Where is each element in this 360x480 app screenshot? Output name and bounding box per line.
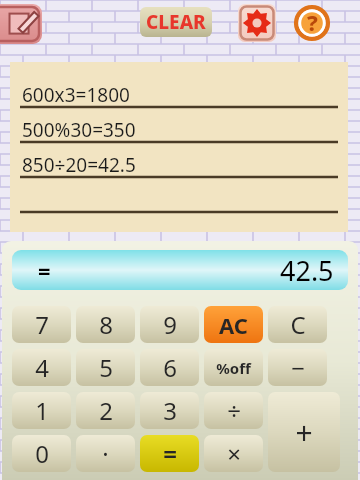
staticText: 9 [163,308,177,341]
staticText: − [291,351,305,384]
button[interactable]: 1 [12,392,71,429]
button[interactable]: C [268,306,327,343]
staticText: 8 [99,308,113,341]
button[interactable]: 5 [76,349,135,386]
staticText: 2 [99,394,113,427]
button[interactable]: %off [204,349,263,386]
staticText: 600x3=1800 [22,82,130,108]
staticText: CLEAR [146,9,206,35]
staticText: ? [307,7,318,37]
button[interactable]: = [140,435,199,472]
staticText: 42.5 [280,252,334,289]
staticText: 4 [35,351,49,384]
staticText: × [227,437,241,470]
button[interactable]: 3 [140,392,199,429]
button[interactable]: Settings [238,4,276,42]
staticText: ÷ [227,394,241,427]
button[interactable]: 600x3=1800 [10,62,348,232]
button[interactable]: CLEAR [140,7,212,37]
staticText: 1 [35,394,49,427]
staticText: 5 [99,351,113,384]
staticText: 3 [163,394,177,427]
button[interactable]: × [204,435,263,472]
button[interactable]: 6 [140,349,199,386]
button[interactable]: Edit note [0,4,42,44]
staticText: C [290,308,306,341]
staticText: %off [216,358,251,378]
staticText: · [102,437,109,470]
button[interactable]: 0 [12,435,71,472]
button[interactable]: ÷ [204,392,263,429]
button[interactable]: 7 [12,306,71,343]
button[interactable]: · [76,435,135,472]
button[interactable]: − [268,349,327,386]
button[interactable]: AC [204,306,263,343]
staticText: = [38,255,51,285]
staticText: + [295,412,313,453]
button[interactable]: + [268,392,340,472]
staticText: = [163,437,177,470]
staticText: 0 [35,437,49,470]
staticText: 500%30=350 [22,117,136,143]
staticText: 850÷20=42.5 [22,152,136,178]
staticText: 6 [163,351,177,384]
button[interactable]: 9 [140,306,199,343]
button[interactable]: Help [294,5,330,41]
button[interactable]: 2 [76,392,135,429]
staticText: 7 [35,308,49,341]
button[interactable]: 4 [12,349,71,386]
button[interactable]: = [12,250,348,290]
staticText: AC [219,310,248,340]
button[interactable]: 8 [76,306,135,343]
